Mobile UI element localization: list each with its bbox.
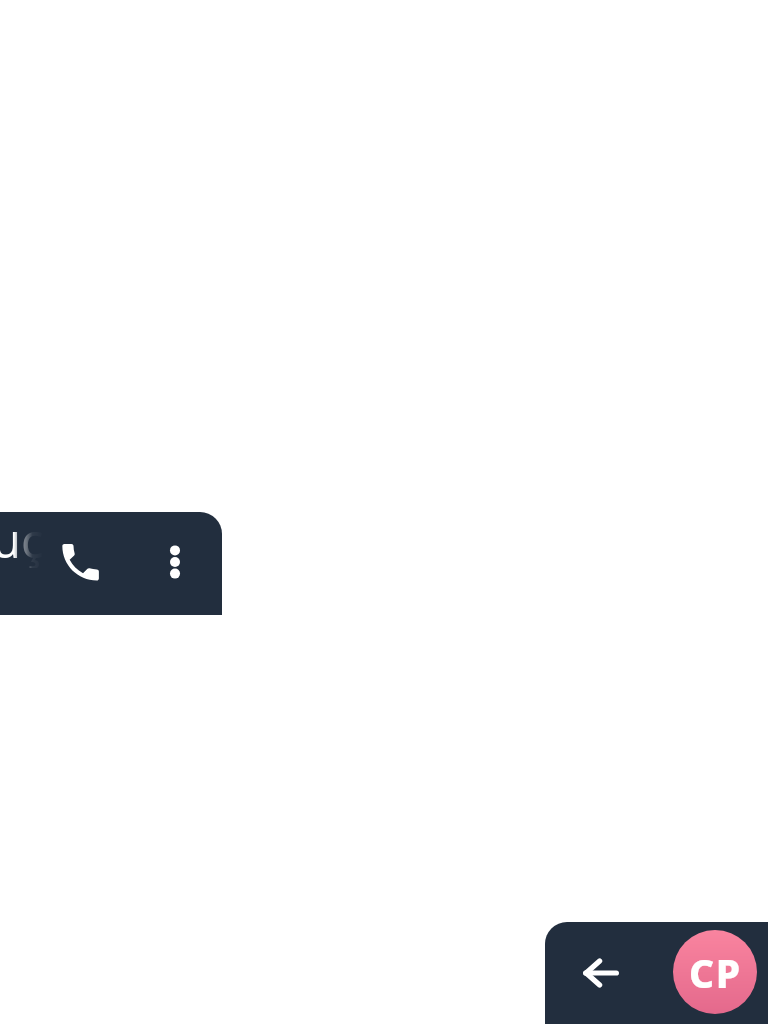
staticText: CP — [689, 946, 742, 999]
button[interactable]: Back — [572, 945, 628, 1001]
button[interactable]: Call — [51, 534, 107, 590]
button[interactable]: CP — [673, 930, 757, 1014]
button[interactable]: More options — [147, 534, 203, 590]
staticText: uç — [0, 512, 44, 568]
